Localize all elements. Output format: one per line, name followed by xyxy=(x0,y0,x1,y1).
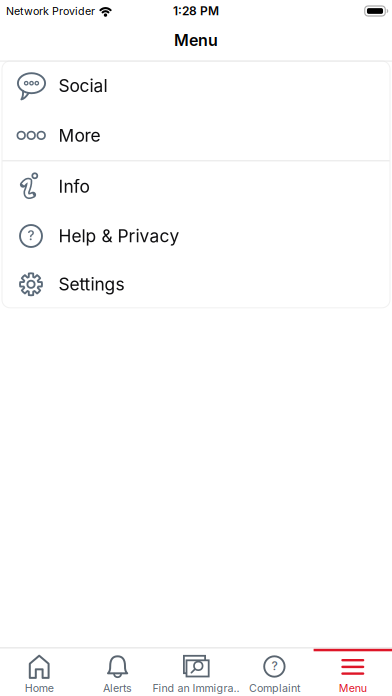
button[interactable]: Info xyxy=(2,162,390,211)
staticText: Menu xyxy=(339,682,367,694)
staticText: ? xyxy=(27,228,34,243)
staticText: Find an Immigra.. xyxy=(152,682,239,694)
button[interactable]: ? xyxy=(235,650,314,696)
staticText: More xyxy=(58,125,100,146)
button[interactable]: Home xyxy=(0,650,78,696)
staticText: Complaint xyxy=(249,682,300,694)
button[interactable]: Alerts xyxy=(78,650,157,696)
button[interactable]: Find an Immigra.. xyxy=(157,650,235,696)
button[interactable]: More xyxy=(2,111,390,160)
staticText: Menu xyxy=(174,31,218,50)
staticText: ? xyxy=(271,659,277,673)
staticText: Social xyxy=(58,76,107,96)
staticText: Settings xyxy=(58,274,124,294)
staticText: Help & Privacy xyxy=(58,226,179,246)
staticText: Network Provider xyxy=(6,5,95,17)
staticText: Home xyxy=(25,682,54,694)
staticText: 1:28 PM xyxy=(173,4,219,18)
staticText: Alerts xyxy=(103,682,132,694)
button[interactable]: Menu xyxy=(314,650,392,696)
button[interactable]: ? xyxy=(2,211,390,261)
staticText: Info xyxy=(58,176,89,197)
button[interactable]: Settings xyxy=(2,261,390,308)
button[interactable]: Social xyxy=(2,61,390,111)
